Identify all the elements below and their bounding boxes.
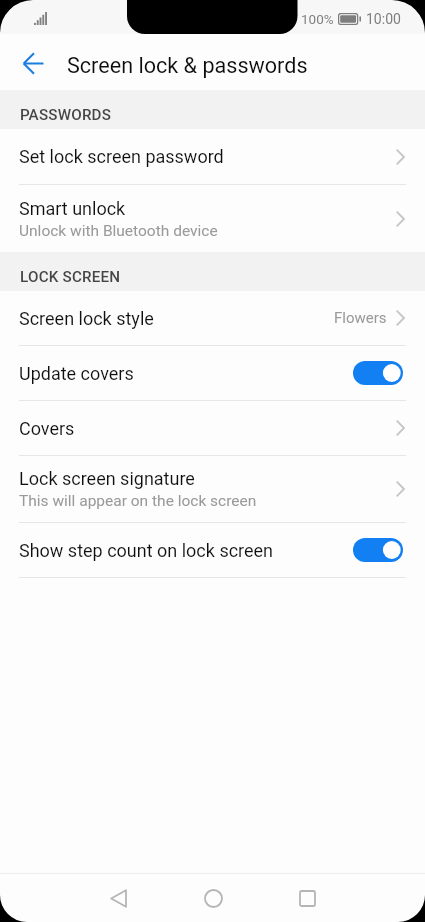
button[interactable]: Update covers — [0, 346, 425, 400]
button[interactable]: Covers — [0, 401, 425, 455]
button[interactable]: Back — [0, 37, 66, 90]
button[interactable]: Recent apps — [260, 874, 354, 922]
button[interactable]: Show step count on lock screen — [0, 523, 425, 577]
staticText: PASSWORDS — [20, 106, 112, 124]
staticText: 100% — [301, 11, 334, 27]
staticText: Unlock with Bluetooth device — [19, 222, 218, 240]
staticText: 10:00 — [366, 11, 401, 27]
staticText: Set lock screen password — [19, 146, 224, 167]
staticText: Screen lock style — [19, 308, 154, 329]
button[interactable]: Back — [71, 874, 166, 922]
button[interactable]: Home — [166, 874, 260, 922]
staticText: Covers — [19, 418, 75, 439]
staticText: Smart unlock — [19, 198, 126, 219]
button[interactable]: Smart unlock — [0, 185, 425, 252]
staticText: Screen lock & passwords — [67, 53, 308, 78]
button[interactable]: Screen lock style — [0, 291, 425, 345]
staticText: Lock screen signature — [19, 468, 195, 489]
staticText: Update covers — [19, 363, 134, 384]
staticText: This will appear on the lock screen — [19, 492, 257, 510]
staticText: Flowers — [334, 309, 387, 327]
button[interactable]: Lock screen signature — [0, 456, 425, 522]
button[interactable]: Set lock screen password — [0, 129, 425, 184]
staticText: Show step count on lock screen — [19, 540, 274, 561]
staticText: LOCK SCREEN — [20, 268, 121, 286]
